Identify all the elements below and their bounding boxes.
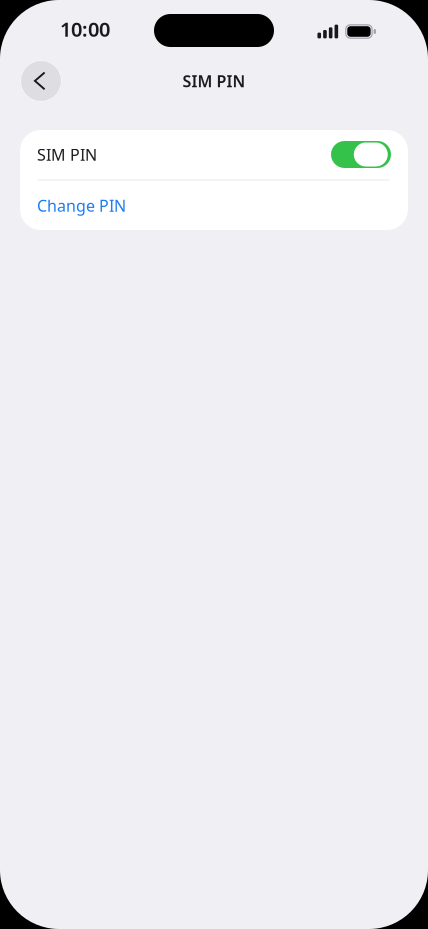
button[interactable]: Back [20,60,62,102]
button[interactable]: SIM PIN [20,129,408,179]
staticText: SIM PIN [37,144,97,165]
staticText: 10:00 [60,16,110,42]
button[interactable]: Change PIN [20,180,408,230]
staticText: Change PIN [37,195,126,216]
staticText: SIM PIN [182,70,245,92]
